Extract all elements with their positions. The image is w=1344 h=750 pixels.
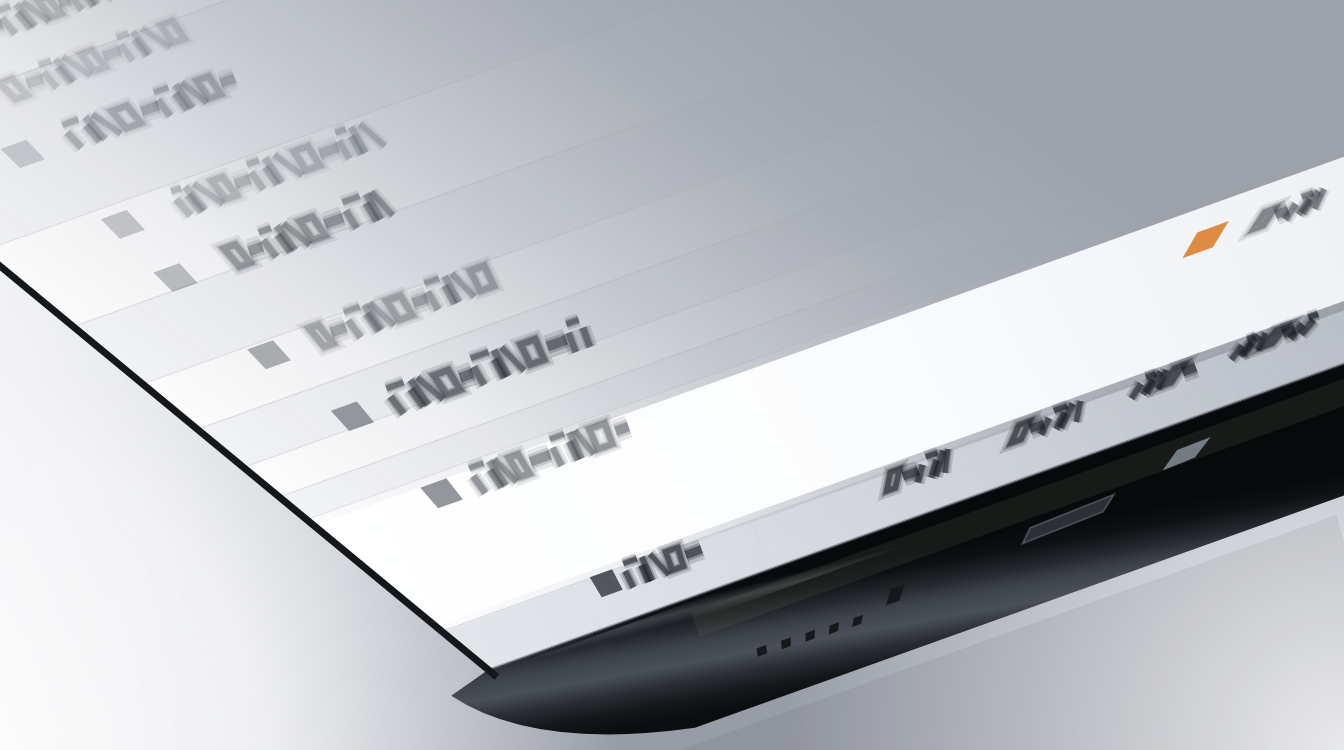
button[interactable]: App home screen: [0, 0, 1344, 750]
